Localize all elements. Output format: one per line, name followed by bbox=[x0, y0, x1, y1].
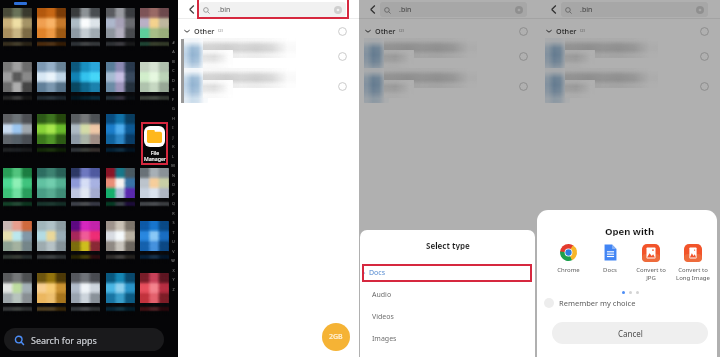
staticText: I bbox=[172, 125, 174, 130]
staticText: U bbox=[172, 239, 175, 244]
button[interactable]: > bbox=[360, 262, 535, 284]
staticText: Videos bbox=[372, 312, 394, 322]
staticText: (2) bbox=[218, 28, 223, 34]
staticText: E bbox=[172, 87, 175, 92]
button[interactable]: Back bbox=[547, 3, 559, 15]
staticText: X bbox=[172, 268, 175, 273]
staticText: B bbox=[172, 59, 175, 64]
staticText: Docs bbox=[603, 266, 617, 274]
staticText: Remember my choice bbox=[559, 298, 636, 308]
button[interactable]: Back bbox=[366, 3, 378, 15]
staticText: Cancel bbox=[618, 328, 643, 339]
staticText: Select type bbox=[426, 240, 470, 250]
staticText: > bbox=[362, 269, 366, 277]
staticText: K bbox=[172, 144, 175, 149]
button[interactable]: Remember my choice bbox=[544, 295, 674, 311]
staticText: O bbox=[172, 182, 175, 187]
staticText: W bbox=[171, 258, 175, 263]
staticText: A bbox=[172, 49, 175, 54]
staticText: Q bbox=[172, 201, 175, 206]
staticText: L bbox=[172, 154, 174, 159]
button[interactable]: Videos bbox=[360, 306, 535, 328]
staticText: # bbox=[172, 40, 175, 45]
staticText: .bin bbox=[218, 5, 231, 15]
button[interactable]: Clear search bbox=[515, 6, 523, 14]
button[interactable]: Cancel bbox=[552, 322, 708, 344]
button[interactable]: Search for apps bbox=[4, 328, 164, 351]
button[interactable]: Convert to Long Image bbox=[671, 243, 715, 283]
button[interactable]: Convert to JPG bbox=[629, 243, 673, 283]
staticText: F bbox=[172, 97, 174, 102]
staticText: Convert to Long Image bbox=[676, 266, 710, 282]
staticText: .bin bbox=[399, 5, 412, 15]
staticText: Search for apps bbox=[31, 334, 97, 346]
staticText: Z bbox=[172, 287, 175, 292]
button[interactable]: 2GB bbox=[322, 323, 350, 351]
button[interactable]: Clear search bbox=[334, 6, 342, 14]
staticText: T bbox=[172, 230, 175, 235]
staticText: G bbox=[172, 106, 175, 111]
staticText: Chrome bbox=[557, 266, 580, 274]
staticText: V bbox=[172, 249, 175, 254]
button[interactable]: Back bbox=[185, 3, 197, 15]
button[interactable]: Images bbox=[360, 328, 535, 350]
staticText: H bbox=[172, 116, 175, 121]
staticText: Docs bbox=[369, 268, 386, 278]
staticText: Other bbox=[194, 26, 215, 36]
staticText: J bbox=[172, 135, 174, 140]
staticText: R bbox=[172, 211, 175, 216]
staticText: Y bbox=[172, 277, 175, 282]
staticText: M bbox=[171, 163, 175, 168]
button[interactable]: File Manager bbox=[141, 122, 168, 165]
staticText: N bbox=[172, 173, 175, 178]
staticText: File Manager bbox=[144, 149, 166, 163]
staticText: D bbox=[172, 78, 175, 83]
button[interactable]: Docs bbox=[588, 243, 632, 283]
button[interactable]: .bin bbox=[380, 2, 527, 17]
button[interactable]: .bin bbox=[561, 2, 708, 17]
staticText: (2) bbox=[580, 28, 585, 34]
staticText: (2) bbox=[399, 28, 404, 34]
button[interactable]: .bin bbox=[199, 2, 346, 17]
button[interactable]: Chrome bbox=[546, 243, 590, 283]
button[interactable]: Audio bbox=[360, 284, 535, 306]
staticText: .bin bbox=[580, 5, 593, 15]
staticText: Other bbox=[556, 26, 577, 36]
staticText: S bbox=[172, 220, 175, 225]
staticText: Other bbox=[375, 26, 396, 36]
staticText: P bbox=[172, 192, 175, 197]
staticText: Convert to JPG bbox=[636, 266, 666, 282]
staticText: Images bbox=[372, 334, 397, 344]
staticText: Open with bbox=[605, 225, 655, 236]
staticText: 2GB bbox=[329, 332, 343, 342]
button[interactable]: Clear search bbox=[696, 6, 704, 14]
staticText: C bbox=[172, 68, 175, 73]
staticText: Audio bbox=[372, 290, 392, 300]
